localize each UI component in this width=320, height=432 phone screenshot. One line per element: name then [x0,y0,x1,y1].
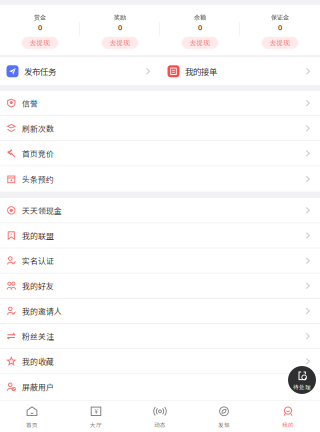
staticText: 余额 [194,14,206,21]
staticText: 保证金 [271,14,289,21]
button[interactable]: 信誉 [0,91,320,116]
button[interactable]: 我的收藏 [0,349,320,374]
staticText: 待处理 [293,383,311,391]
staticText: 我的收藏 [22,356,54,367]
staticText: 我的接单 [185,65,217,77]
staticText: 首页竞价 [22,148,54,159]
staticText: 奖励 [114,14,126,21]
staticText: 0 [118,23,122,32]
button[interactable]: 发布任务 [0,57,160,85]
staticText: 0 [38,23,42,32]
staticText: 动态 [154,421,166,429]
staticText: 信誉 [22,97,38,109]
button[interactable]: 实名认证 [0,249,320,274]
staticText: 我的联盟 [22,230,54,241]
staticText: ¥ [94,407,97,416]
button[interactable]: 我的 [256,401,320,432]
button[interactable]: 我的好友 [0,274,320,299]
button[interactable]: 首页竞价 [0,141,320,166]
staticText: 首页 [26,421,38,429]
staticText: 去提现 [269,39,290,47]
button[interactable]: 去提现 [102,37,138,49]
button[interactable]: 我的接单 [160,57,320,85]
staticText: 天天领现金 [22,205,62,216]
staticText: 我的好友 [22,280,54,291]
staticText: 去提现 [109,39,130,47]
staticText: 粉丝关注 [22,330,54,342]
button[interactable]: 粉丝关注 [0,324,320,349]
staticText: 去提现 [189,39,210,47]
staticText: 发现 [218,421,230,429]
button[interactable]: 头条预约 [0,166,320,192]
staticText: 我的邀请人 [22,305,62,317]
button[interactable]: 动态 [128,401,192,432]
button[interactable]: 去提现 [262,37,298,49]
button[interactable]: 待处理 [288,366,316,394]
staticText: 发布任务 [24,65,56,77]
button[interactable]: 屏蔽用户 [0,374,320,399]
staticText: 实名认证 [22,255,54,266]
button[interactable]: 首页 [0,401,64,432]
staticText: 去提现 [29,39,50,47]
button[interactable]: 刷新次数 [0,116,320,141]
staticText: 0 [198,23,202,32]
button[interactable]: 发现 [192,401,256,432]
staticText: 大厅 [90,421,102,429]
button[interactable]: 我的联盟 [0,223,320,249]
button[interactable]: ¥ [64,401,128,432]
button[interactable]: 天天领现金 [0,198,320,223]
button[interactable]: 我的邀请人 [0,299,320,324]
button[interactable]: 去提现 [22,37,58,49]
button[interactable]: 去提现 [182,37,218,49]
staticText: 0 [278,23,282,32]
staticText: 屏蔽用户 [22,381,54,393]
staticText: 我的 [282,421,294,429]
staticText: 赏金 [34,14,46,21]
staticText: 刷新次数 [22,122,54,134]
staticText: 头条预约 [22,173,54,185]
